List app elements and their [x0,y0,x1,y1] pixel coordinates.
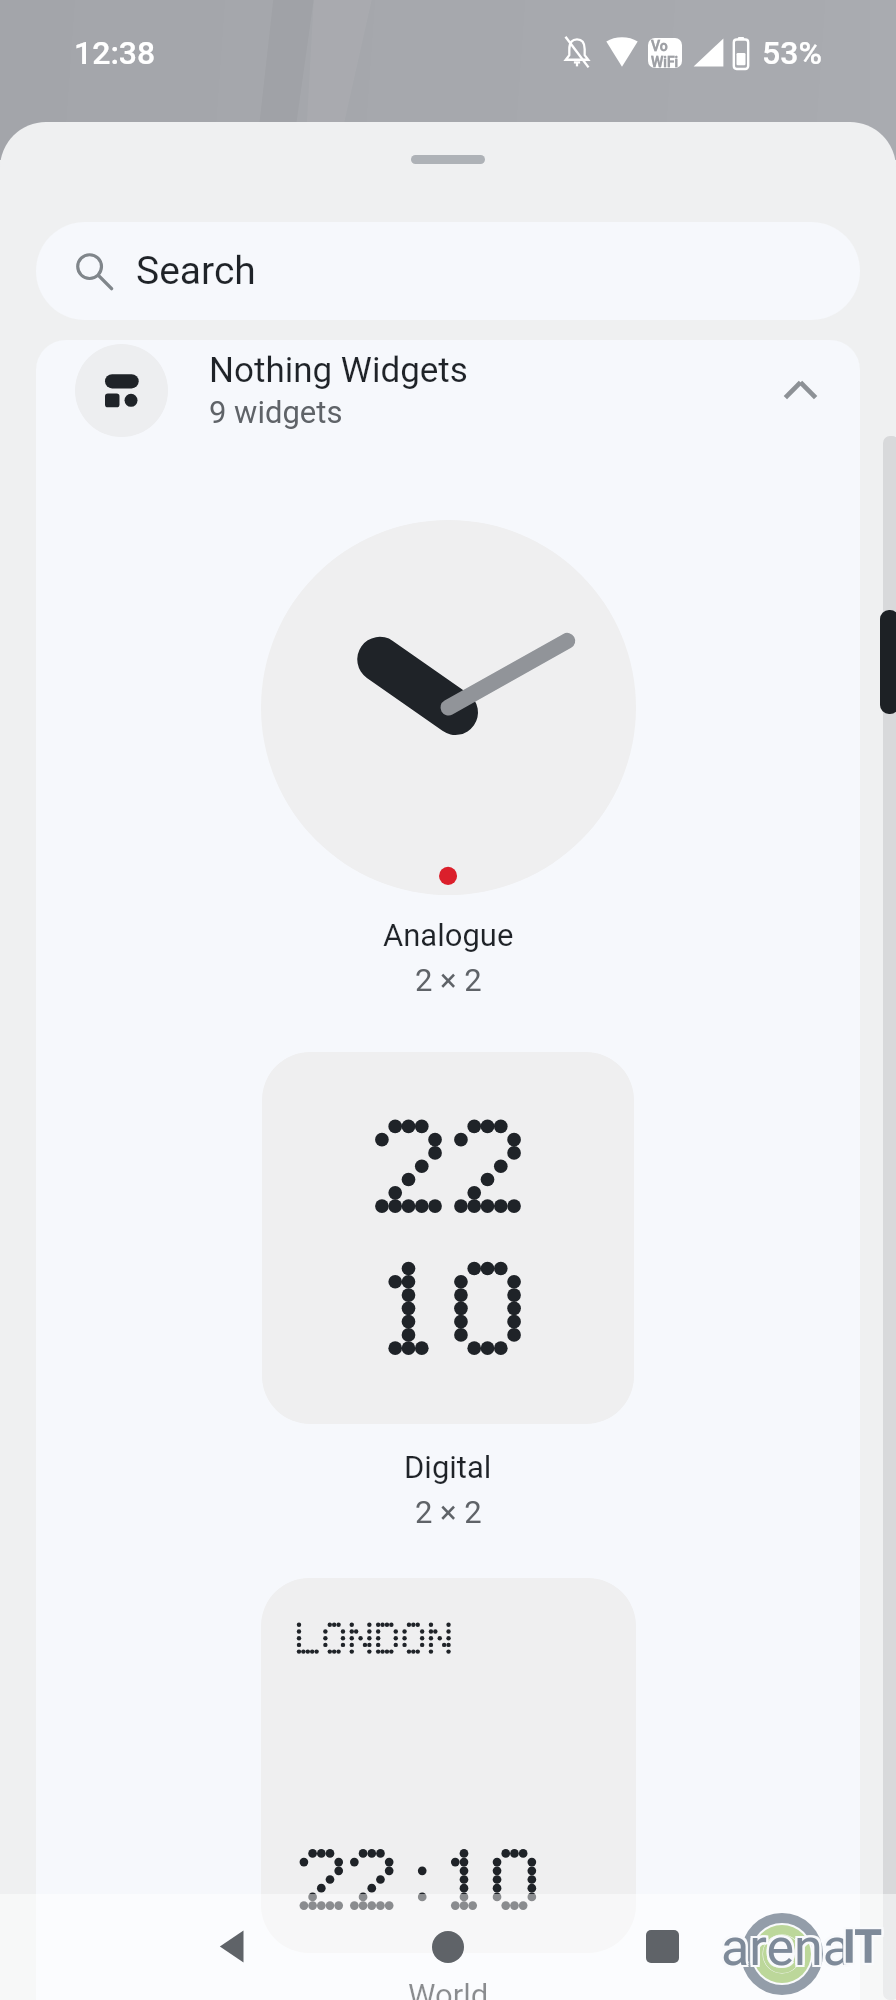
staticText: Search [136,248,256,294]
button[interactable]: Nothing Widgets [36,340,860,440]
staticText: arena [719,1917,849,1978]
staticText: 9 widgets [209,394,343,430]
staticText: IT [845,1921,884,1973]
staticText: arena [723,1919,853,1980]
staticText: 2 × 2 [415,1494,482,1530]
staticText: IT [841,1919,880,1971]
staticText: World [408,1977,489,2000]
staticText: Nothing Widgets [209,350,468,391]
staticText: 12:38 [74,34,156,72]
staticText: arena [719,1915,849,1976]
staticText: IT [843,1919,882,1971]
staticText: arena [723,1917,853,1978]
button[interactable]: World [36,1530,860,2000]
button[interactable]: Recents [606,1893,718,2000]
button[interactable]: Back [176,1893,288,2000]
staticText: IT [845,1919,884,1971]
button[interactable]: Analogue [36,440,860,998]
staticText: IT [843,1921,882,1973]
staticText: arena [721,1915,851,1976]
button[interactable]: Search [36,222,860,320]
staticText: arena [719,1919,849,1980]
staticText: arena [723,1915,853,1976]
button[interactable]: Home [392,1893,504,2000]
staticText: 53% [762,34,822,72]
staticText: IT [841,1923,880,1975]
staticText: IT [841,1921,880,1973]
button[interactable]: Digital [36,998,860,1530]
staticText: arena [721,1917,851,1978]
staticText: Vo [651,38,668,54]
staticText: 2 × 2 [415,962,482,998]
staticText: IT [845,1923,884,1975]
staticText: WiFi [651,54,679,68]
staticText: arena [721,1919,851,1980]
staticText: IT [843,1923,882,1975]
button[interactable]: Collapse [760,350,840,430]
staticText: Digital [404,1449,492,1485]
staticText: Analogue [383,917,514,953]
